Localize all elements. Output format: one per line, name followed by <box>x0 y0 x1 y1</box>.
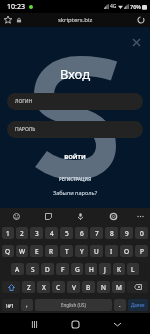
staticText: J <box>104 265 106 274</box>
staticText: E <box>35 247 39 256</box>
button[interactable]: 0 <box>135 227 148 239</box>
button[interactable]: H <box>85 263 97 275</box>
button[interactable]: Stickers <box>41 209 55 223</box>
button[interactable]: ЛОГИН <box>7 93 143 110</box>
staticText: 6 <box>80 229 84 238</box>
staticText: Q <box>5 247 11 256</box>
button[interactable]: M <box>112 281 125 293</box>
button[interactable]: Далее <box>128 299 148 311</box>
button[interactable]: Reload <box>137 16 145 24</box>
staticText: . <box>119 301 121 309</box>
button[interactable]: 7 <box>90 227 103 239</box>
staticText: U <box>94 247 99 256</box>
button[interactable]: E <box>30 245 43 257</box>
button[interactable]: V <box>67 281 80 293</box>
button[interactable]: S <box>26 263 39 275</box>
button[interactable]: D <box>41 263 54 275</box>
button[interactable]: C <box>52 281 65 293</box>
button[interactable]: X <box>37 281 50 293</box>
button[interactable]: K <box>113 263 125 275</box>
staticText: W <box>19 247 26 256</box>
button[interactable]: Settings <box>106 209 120 223</box>
button[interactable]: Emoji <box>9 209 23 223</box>
button[interactable]: 5 <box>60 227 73 239</box>
button[interactable]: L <box>127 263 139 275</box>
staticText: Далее <box>131 302 145 308</box>
staticText: 3 <box>35 229 39 238</box>
button[interactable]: Забыли пароль? <box>0 189 150 197</box>
button[interactable]: Home <box>67 316 83 332</box>
staticText: A <box>15 265 20 274</box>
staticText: , <box>26 301 28 309</box>
button[interactable]: Recents <box>26 316 42 332</box>
button[interactable]: 6 <box>75 227 88 239</box>
staticText: 7 <box>95 229 99 238</box>
staticText: D <box>45 265 50 274</box>
staticText: M <box>116 283 122 292</box>
button[interactable]: Close <box>133 39 140 46</box>
button[interactable]: РЕГИСТРАЦИЯ <box>0 176 150 182</box>
staticText: B <box>86 283 91 292</box>
staticText: X <box>42 283 46 292</box>
staticText: 5 <box>65 229 69 238</box>
button[interactable]: 8 <box>105 227 118 239</box>
staticText: 9 <box>125 229 129 238</box>
button[interactable]: B <box>82 281 95 293</box>
staticText: T <box>65 247 69 256</box>
button[interactable]: R <box>45 245 58 257</box>
staticText: !#1 <box>6 302 15 309</box>
button[interactable]: ПАРОЛЬ <box>7 121 143 138</box>
staticText: S <box>31 265 35 274</box>
staticText: 1 <box>6 229 10 238</box>
button[interactable]: Shift <box>2 281 20 293</box>
staticText: skripters.biz <box>58 16 93 24</box>
staticText: 0 <box>140 229 144 238</box>
button[interactable]: Bookmark <box>4 16 12 24</box>
button[interactable]: , <box>21 299 33 311</box>
button[interactable]: ВОЙТИ <box>0 153 150 161</box>
button[interactable]: Back <box>109 316 125 332</box>
button[interactable]: 2 <box>16 227 28 239</box>
button[interactable]: Z <box>22 281 35 293</box>
button[interactable]: 9 <box>120 227 133 239</box>
staticText: 4 <box>50 229 54 238</box>
button[interactable]: P <box>135 245 148 257</box>
staticText: L <box>131 265 135 274</box>
button[interactable]: More <box>133 209 147 223</box>
staticText: 8 <box>110 229 114 238</box>
button[interactable]: Q <box>2 245 14 257</box>
button[interactable]: A <box>11 263 24 275</box>
button[interactable]: J <box>99 263 111 275</box>
button[interactable]: G <box>71 263 83 275</box>
button[interactable]: !#1 <box>2 299 19 311</box>
button[interactable]: . <box>114 299 126 311</box>
staticText: 4G <box>110 3 117 10</box>
staticText: P <box>140 247 144 256</box>
staticText: Z <box>27 283 31 292</box>
button[interactable]: 3 <box>30 227 43 239</box>
button[interactable]: English (US) <box>35 299 112 311</box>
button[interactable]: N <box>97 281 110 293</box>
button[interactable]: T <box>60 245 73 257</box>
button[interactable]: Backspace <box>127 281 148 293</box>
button[interactable]: U <box>90 245 103 257</box>
staticText: R <box>49 247 54 256</box>
staticText: ПАРОЛЬ <box>15 126 36 133</box>
staticText: 2 <box>20 229 24 238</box>
staticText: Y <box>80 247 84 256</box>
button[interactable]: O <box>120 245 133 257</box>
staticText: ЛОГИН <box>15 98 33 105</box>
staticText: I <box>110 247 113 256</box>
button[interactable]: 1 <box>2 227 14 239</box>
staticText: H <box>89 265 94 274</box>
staticText: Вход <box>0 65 150 83</box>
button[interactable]: Y <box>75 245 88 257</box>
staticText: 10:23 <box>7 2 25 12</box>
button[interactable]: F <box>56 263 69 275</box>
staticText: O <box>124 247 130 256</box>
button[interactable]: 4 <box>45 227 58 239</box>
button[interactable]: Site info <box>16 17 22 23</box>
button[interactable]: W <box>16 245 28 257</box>
button[interactable]: I <box>105 245 118 257</box>
button[interactable]: Voice input <box>73 209 87 223</box>
